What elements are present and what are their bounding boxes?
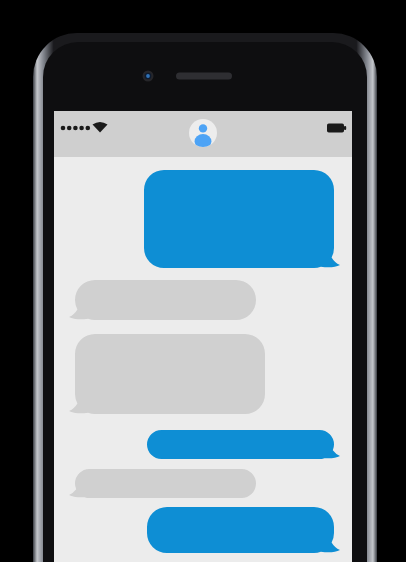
button[interactable]: Message conversation on phone	[0, 0, 406, 562]
